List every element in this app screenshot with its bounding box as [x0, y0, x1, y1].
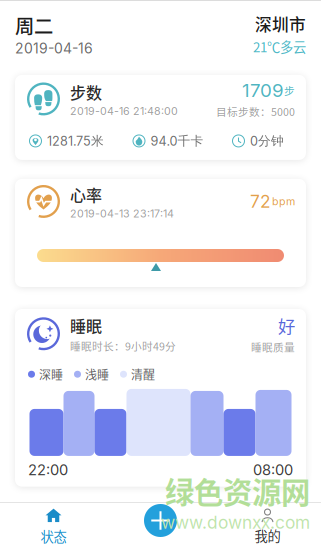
- staticText: 步数: [70, 80, 102, 104]
- button[interactable]: Add: [107, 503, 214, 550]
- staticText: 目标步数：5000: [216, 103, 295, 119]
- staticText: 心率: [70, 183, 102, 206]
- staticText: 深睡: [39, 365, 63, 383]
- staticText: 绿色资源网: [165, 470, 310, 512]
- staticText: 0分钟: [250, 133, 284, 149]
- staticText: 2019-04-16: [15, 40, 93, 57]
- staticText: 睡眠: [70, 314, 102, 337]
- staticText: www.downxx.com: [161, 512, 310, 533]
- staticText: 72: [250, 191, 271, 212]
- button[interactable]: 状态: [0, 503, 107, 550]
- staticText: 好: [278, 313, 295, 338]
- staticText: 21℃多云: [253, 37, 306, 56]
- staticText: 我的: [254, 526, 280, 545]
- staticText: 94.0千卡: [150, 133, 203, 149]
- staticText: 1709: [242, 79, 284, 101]
- staticText: 1281.75米: [47, 133, 104, 149]
- button[interactable]: 我的: [214, 503, 321, 550]
- staticText: 步: [284, 82, 295, 98]
- staticText: 2019-04-13 23:17:14: [70, 207, 174, 220]
- staticText: 08:00: [253, 461, 293, 479]
- staticText: 2019-04-16 21:48:00: [70, 105, 178, 117]
- staticText: bpm: [272, 195, 295, 208]
- button[interactable]: Add record: [144, 504, 177, 537]
- staticText: 状态: [40, 526, 66, 546]
- staticText: 睡眠质量: [251, 339, 295, 354]
- staticText: 深圳市: [255, 12, 306, 36]
- staticText: 清醒: [131, 365, 155, 383]
- staticText: 22:00: [28, 461, 68, 479]
- staticText: 睡眠时长：9小时49分: [70, 338, 176, 353]
- staticText: 浅睡: [85, 365, 109, 383]
- staticText: 周二: [15, 11, 53, 39]
